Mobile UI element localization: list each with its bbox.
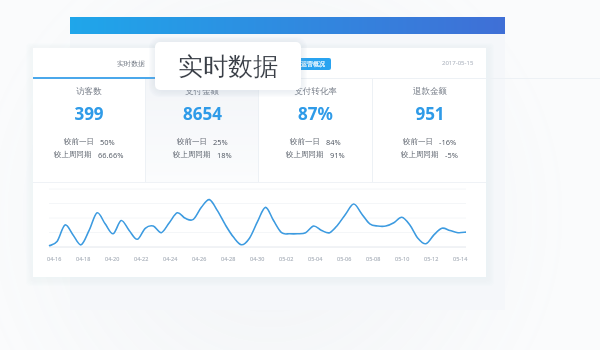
staticText: 较上周同期 (54, 150, 92, 159)
button[interactable]: 访客数 (33, 79, 145, 182)
staticText: 04-22 (134, 255, 149, 262)
staticText: 05-12 (424, 255, 439, 262)
staticText: 实时数据 (117, 59, 145, 68)
staticText: 较前一日 (290, 137, 320, 146)
staticText: 05-04 (308, 255, 323, 262)
staticText: 运营概况 (301, 60, 325, 68)
staticText: 05-06 (337, 255, 352, 262)
button[interactable]: 运营概况 (295, 58, 331, 70)
staticText: 支付转化率 (294, 86, 337, 97)
staticText: 较前一日 (177, 137, 207, 146)
staticText: 较前一日 (403, 137, 433, 146)
staticText: 25% (213, 137, 228, 147)
staticText: 实时数据 (178, 51, 278, 82)
staticText: 2017-05-15 (442, 59, 474, 67)
button[interactable]: 支付金额 (146, 79, 258, 182)
staticText: -16% (439, 137, 457, 147)
staticText: 05-08 (366, 255, 381, 262)
staticText: 04-26 (192, 255, 207, 262)
staticText: 8654 (183, 102, 222, 125)
staticText: 04-16 (47, 255, 62, 262)
staticText: 91% (330, 150, 345, 160)
staticText: 支付金额 (185, 86, 219, 97)
staticText: 04-24 (163, 255, 178, 262)
staticText: 较前一日 (64, 137, 94, 146)
staticText: 较上周同期 (401, 150, 439, 159)
staticText: 较上周同期 (286, 150, 324, 159)
staticText: 访客数 (76, 86, 102, 97)
staticText: 66.66% (98, 150, 124, 160)
staticText: -5% (445, 150, 458, 160)
staticText: 04-30 (250, 255, 265, 262)
staticText: 04-20 (105, 255, 120, 262)
staticText: 05-02 (279, 255, 294, 262)
staticText: 951 (415, 102, 445, 125)
button[interactable]: 实时数据 (113, 55, 149, 72)
button[interactable]: 支付转化率 (259, 79, 372, 182)
staticText: 05-10 (395, 255, 410, 262)
staticText: 05-14 (453, 255, 468, 262)
staticText: 04-18 (76, 255, 91, 262)
button[interactable]: 退款金额 (373, 79, 486, 182)
staticText: 04-28 (221, 255, 236, 262)
staticText: 50% (100, 137, 115, 147)
staticText: 较上周同期 (173, 150, 211, 159)
button[interactable]: 实时数据 (155, 42, 301, 90)
staticText: 18% (217, 150, 232, 160)
staticText: 84% (326, 137, 341, 147)
staticText: 退款金额 (413, 86, 447, 97)
staticText: 87% (298, 102, 333, 125)
staticText: 399 (74, 102, 104, 125)
